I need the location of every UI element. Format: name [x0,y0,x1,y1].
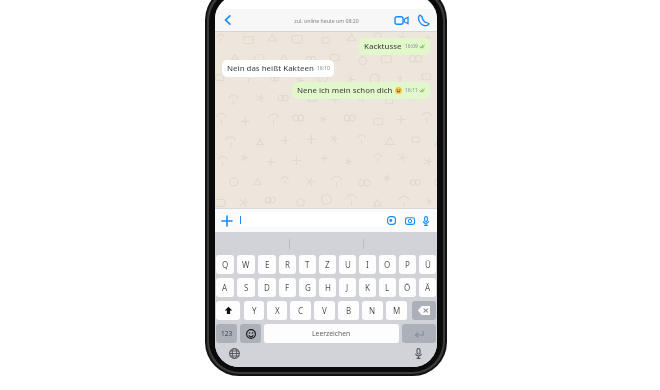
staticText: B [346,305,352,316]
staticText: P [405,259,410,270]
button[interactable]: W [237,255,255,274]
staticText: S [244,282,249,293]
button[interactable]: Ö [399,278,416,297]
button[interactable]: Leerzeichen [264,324,399,343]
button[interactable]: V [314,301,335,320]
staticText: X [275,305,280,316]
button[interactable]: D [258,278,276,297]
staticText: 16:09 [405,43,418,50]
button[interactable]: H [319,278,336,297]
button[interactable]: Dictation [411,346,425,360]
staticText: I [366,259,369,270]
button[interactable]: G [299,278,316,297]
button[interactable]: Kacktusse [359,38,430,55]
button[interactable] [236,213,399,227]
staticText: C [298,305,304,316]
button[interactable]: Nein das heißt Kakteen [222,60,334,77]
staticText: Y [252,305,257,316]
staticText: L [385,282,390,293]
staticText: Nein das heißt Kakteen [227,63,314,74]
button[interactable]: K [359,278,376,297]
button[interactable]: E [258,255,276,274]
button[interactable]: Camera [402,213,417,228]
button[interactable] [216,301,240,320]
staticText: N [369,305,376,316]
staticText: Kacktusse [364,41,402,52]
button[interactable]: L [379,278,396,297]
staticText: Ö [404,282,411,293]
button[interactable]: Voice message [418,213,433,228]
button[interactable]: B [338,301,359,320]
button[interactable]: U [339,255,356,274]
button[interactable]: M [386,301,407,320]
staticText: 123 [221,329,233,338]
button[interactable]: Nene ich mein schon dich [292,82,430,99]
staticText: zul. online heute um 08:20 [294,17,359,24]
staticText: J [346,282,349,293]
button[interactable]: R [279,255,296,274]
staticText: 16:10 [317,65,330,72]
staticText: H [325,282,331,293]
staticText: R [285,259,290,270]
staticText: 16:11 [405,87,418,94]
button[interactable]: A [216,278,234,297]
button[interactable]: Video call [392,11,410,29]
staticText: M [393,305,401,316]
button[interactable]: Z [319,255,336,274]
button[interactable]: I [359,255,376,274]
button[interactable]: Attach [219,213,234,228]
button[interactable]: Change keyboard language [227,346,241,360]
button[interactable]: C [290,301,311,320]
staticText: Nene ich mein schon dich [297,85,393,96]
button[interactable]: X [267,301,287,320]
staticText: G [305,282,311,293]
staticText: E [265,259,270,270]
button[interactable]: O [379,255,396,274]
button[interactable]: Emoji [240,324,261,343]
button[interactable]: Y [244,301,264,320]
button[interactable]: Voice call [414,11,432,29]
staticText: O [384,259,391,270]
staticText: K [365,282,370,293]
button[interactable]: 123 [216,324,237,343]
button[interactable]: N [362,301,383,320]
staticText: Leerzeichen [312,329,351,338]
staticText: Q [222,259,229,270]
staticText: W [242,259,250,270]
staticText: Ü [425,259,431,270]
button[interactable]: S [237,278,255,297]
staticText: A [222,282,228,293]
button[interactable]: Backspace [412,301,436,320]
staticText: U [345,259,351,270]
staticText: D [264,282,270,293]
staticText: F [285,282,290,293]
staticText: V [322,305,327,316]
button[interactable]: P [399,255,416,274]
staticText: Ä [425,282,431,293]
button[interactable]: J [339,278,356,297]
staticText: T [305,259,310,270]
button[interactable]: T [299,255,316,274]
staticText: Z [325,259,330,270]
button[interactable]: Ü [419,255,436,274]
button[interactable]: F [279,278,296,297]
button[interactable]: Return [402,324,436,343]
button[interactable]: Back [218,10,238,30]
button[interactable]: Q [216,255,234,274]
button[interactable]: Ä [419,278,436,297]
